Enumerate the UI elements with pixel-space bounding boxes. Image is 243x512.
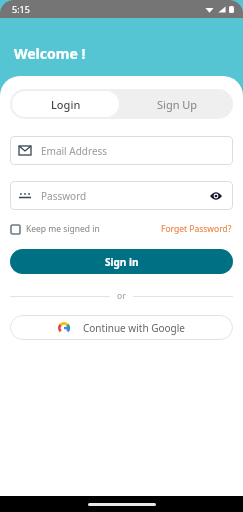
- staticText: Welcome !: [14, 44, 86, 63]
- staticText: or: [117, 290, 126, 302]
- button[interactable]: Login: [12, 91, 119, 117]
- button[interactable]: Show password: [208, 188, 224, 204]
- button[interactable]: Sign in: [10, 249, 233, 274]
- staticText: Forget Password?: [161, 223, 232, 235]
- staticText: Keep me signed in: [26, 223, 100, 235]
- staticText: Email Address: [41, 144, 108, 158]
- staticText: 5:15: [12, 3, 30, 15]
- button[interactable]: Password: [10, 181, 233, 210]
- button[interactable]: Forget Password?: [161, 223, 232, 235]
- staticText: Login: [51, 97, 81, 112]
- button[interactable]: Email Address: [10, 136, 233, 165]
- staticText: Continue with Google: [83, 321, 185, 335]
- staticText: Sign Up: [157, 97, 198, 112]
- button[interactable]: Keep me signed in: [11, 223, 100, 235]
- staticText: Password: [41, 189, 87, 203]
- button[interactable]: Continue with Google: [10, 315, 233, 340]
- staticText: Sign in: [105, 255, 139, 269]
- button[interactable]: Sign Up: [121, 89, 233, 119]
